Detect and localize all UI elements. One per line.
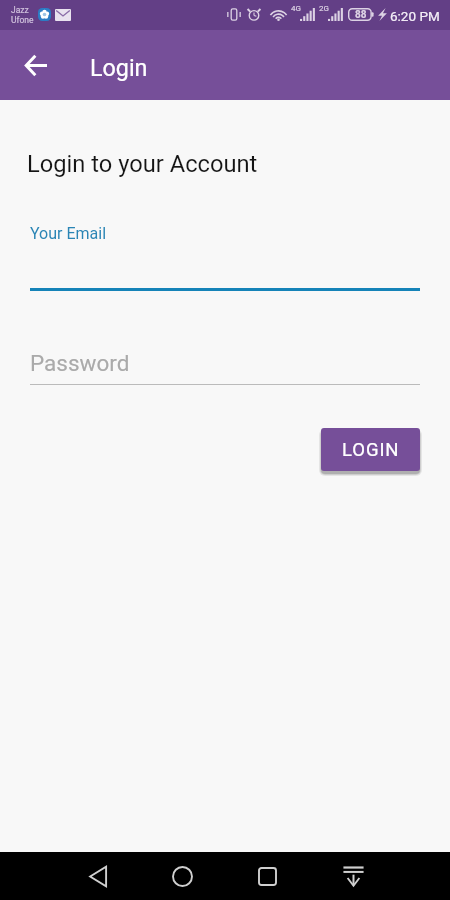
button[interactable]: Back [14,43,58,87]
staticText: 88 [355,9,367,21]
staticText: Password [30,350,130,376]
staticText: 2G [319,4,329,13]
button[interactable]: Recent apps [247,856,287,896]
button[interactable]: LOGIN [321,428,420,471]
button[interactable]: Hide keyboard [333,855,373,895]
button[interactable]: Your Email [30,218,420,291]
button[interactable]: Password [30,344,420,384]
button[interactable]: Home [162,856,202,896]
staticText: Ufone [11,15,34,25]
staticText: 6:20 PM [390,8,440,24]
staticText: Your Email [30,224,107,243]
staticText: LOGIN [342,439,400,461]
staticText: Login to your Account [27,150,258,178]
staticText: Jazz [11,5,29,15]
staticText: Login [90,54,148,81]
button[interactable]: Back [78,856,118,896]
staticText: 4G [291,4,301,13]
